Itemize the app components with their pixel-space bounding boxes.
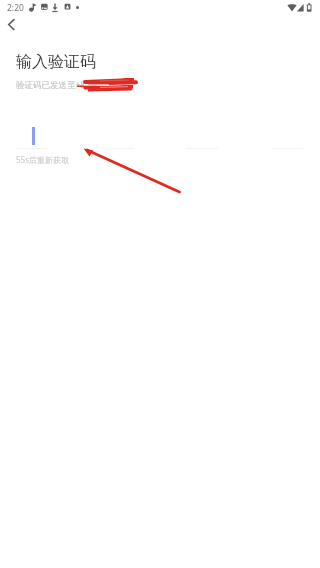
button[interactable]: Back [0, 17, 26, 43]
staticText: 2:20 [7, 2, 24, 14]
staticText: 输入验证码 [16, 52, 96, 72]
staticText: 验证码已发送至+86 [16, 79, 91, 91]
button[interactable]: 55s后重新获取 [16, 154, 69, 165]
button[interactable] [17, 126, 49, 149]
